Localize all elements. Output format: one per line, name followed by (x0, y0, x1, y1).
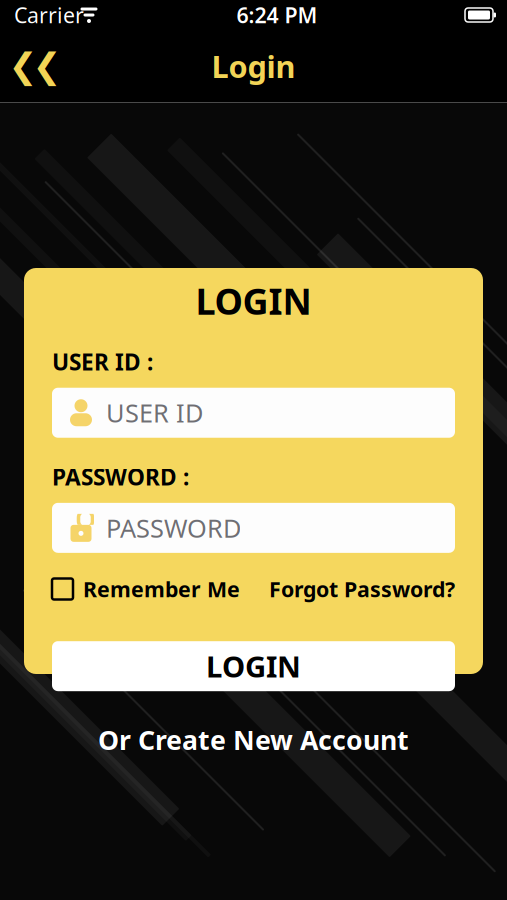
staticText: Or Create New Account (98, 722, 409, 757)
staticText: LOGIN (206, 647, 301, 686)
button[interactable]: Or Create New Account (82, 714, 425, 765)
staticText: Carrier (14, 1, 84, 29)
button[interactable]: PASSWORD (52, 492, 455, 553)
staticText: ❮ (32, 46, 61, 86)
staticText: 6:24 PM (236, 1, 317, 29)
staticText: PASSWORD (106, 511, 241, 545)
staticText: Forgot Password? (269, 575, 455, 603)
staticText: LOGIN (195, 277, 311, 325)
button[interactable]: Back (8, 41, 62, 91)
staticText: USER ID (106, 396, 203, 429)
button[interactable]: USER ID (52, 377, 455, 438)
staticText: Login (211, 46, 295, 86)
button[interactable]: LOGIN (52, 641, 455, 691)
button[interactable]: Forgot Password? (269, 569, 455, 609)
staticText: Remember Me (83, 575, 240, 603)
staticText: PASSWORD : (52, 462, 189, 492)
staticText: ❮ (8, 46, 37, 86)
button[interactable]: Remember Me (52, 569, 240, 609)
staticText: USER ID : (52, 347, 153, 377)
